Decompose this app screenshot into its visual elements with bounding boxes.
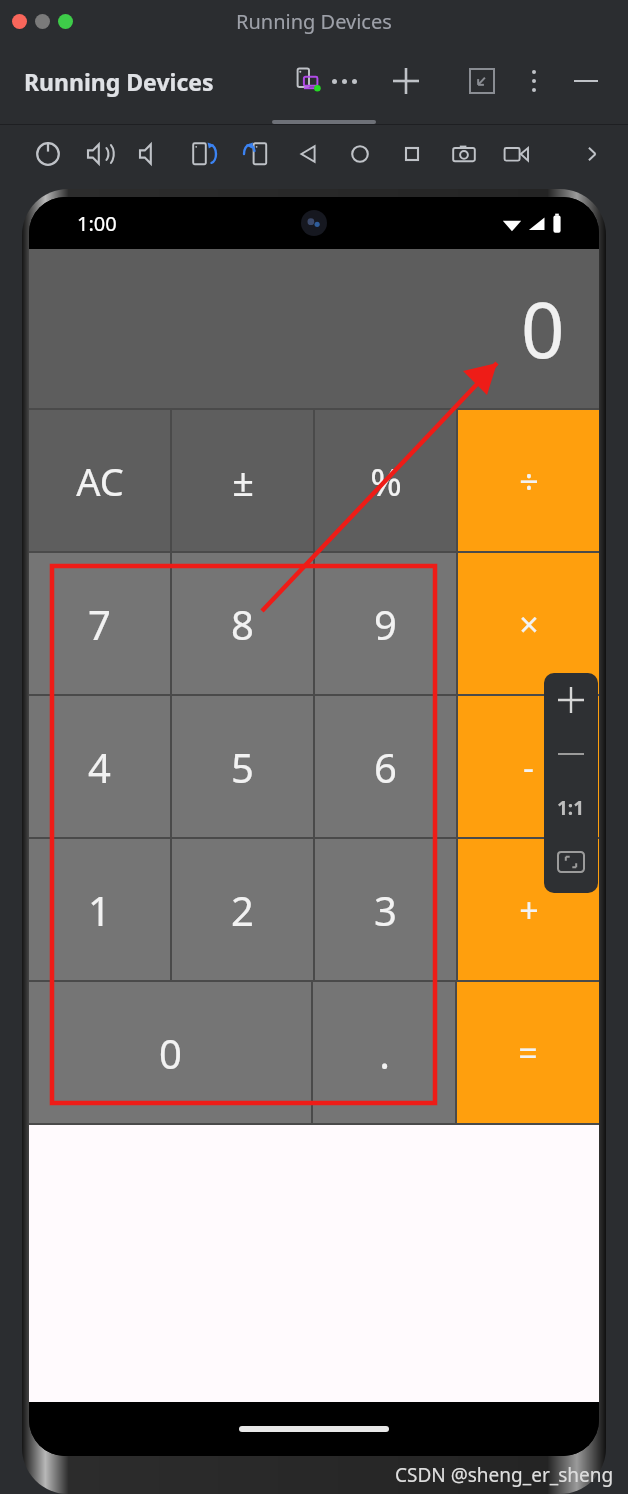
button[interactable]: 3: [315, 839, 456, 980]
button[interactable]: 7: [29, 553, 170, 694]
button[interactable]: 5: [172, 696, 313, 837]
staticText: 9: [374, 597, 397, 651]
staticText: 4: [88, 740, 111, 794]
button[interactable]: More options: [515, 62, 553, 100]
button[interactable]: Back: [282, 128, 334, 180]
button[interactable]: +: [458, 839, 599, 980]
staticText: 0: [521, 277, 565, 381]
button[interactable]: =: [457, 982, 599, 1123]
staticText: %: [370, 455, 402, 507]
staticText: -: [523, 744, 534, 790]
staticText: CSDN @sheng_er_sheng: [395, 1462, 614, 1488]
staticText: AC: [76, 455, 124, 507]
button[interactable]: Rotate left: [178, 128, 230, 180]
button[interactable]: Screenshot: [438, 128, 490, 180]
other: Device tab: [294, 66, 324, 96]
button[interactable]: Add device: [385, 60, 427, 102]
button[interactable]: %: [315, 410, 456, 551]
button[interactable]: .: [313, 982, 455, 1123]
button[interactable]: 9: [315, 553, 456, 694]
button[interactable]: 1: [29, 839, 170, 980]
button[interactable]: Device tab: [290, 60, 361, 102]
button[interactable]: Fit to screen: [544, 835, 598, 889]
button[interactable]: ÷: [458, 410, 599, 551]
staticText: Running Devices: [236, 8, 392, 35]
staticText: 6: [374, 740, 397, 794]
button[interactable]: Rotate right: [230, 128, 282, 180]
button[interactable]: Volume up: [74, 128, 126, 180]
button[interactable]: Volume down: [126, 128, 178, 180]
button[interactable]: Zoom out: [544, 727, 598, 781]
button[interactable]: 4: [29, 696, 170, 837]
button[interactable]: Maximize: [58, 14, 73, 29]
button[interactable]: Home: [334, 128, 386, 180]
button[interactable]: Collapse: [462, 61, 502, 101]
staticText: ±: [232, 455, 254, 507]
staticText: 7: [88, 597, 111, 651]
staticText: 2: [231, 883, 254, 937]
button[interactable]: Record screen: [490, 128, 542, 180]
button[interactable]: Overview: [386, 128, 438, 180]
staticText: =: [518, 1030, 538, 1076]
staticText: 5: [231, 740, 254, 794]
button[interactable]: -: [458, 696, 599, 837]
button[interactable]: Close: [12, 14, 27, 29]
staticText: 8: [231, 597, 254, 651]
staticText: ×: [519, 601, 539, 647]
button[interactable]: 1:1: [544, 781, 598, 835]
staticText: ÷: [519, 458, 539, 504]
button[interactable]: 6: [315, 696, 456, 837]
button[interactable]: Hide: [565, 60, 607, 102]
button[interactable]: 0: [29, 982, 311, 1123]
staticText: +: [519, 887, 539, 933]
button[interactable]: Zoom in: [544, 673, 598, 727]
button[interactable]: ±: [172, 410, 313, 551]
button[interactable]: ×: [458, 553, 599, 694]
staticText: 1:00: [77, 210, 117, 237]
staticText: Running Devices: [24, 66, 214, 97]
button[interactable]: Power: [22, 128, 74, 180]
staticText: 1: [88, 883, 111, 937]
button[interactable]: 8: [172, 553, 313, 694]
button[interactable]: AC: [29, 410, 170, 551]
button[interactable]: 2: [172, 839, 313, 980]
staticText: .: [379, 1026, 390, 1080]
staticText: 3: [374, 883, 397, 937]
button[interactable]: Minimize: [35, 14, 50, 29]
staticText: 1:1: [557, 795, 585, 821]
staticText: 0: [159, 1026, 182, 1080]
button[interactable]: More: [572, 134, 612, 174]
